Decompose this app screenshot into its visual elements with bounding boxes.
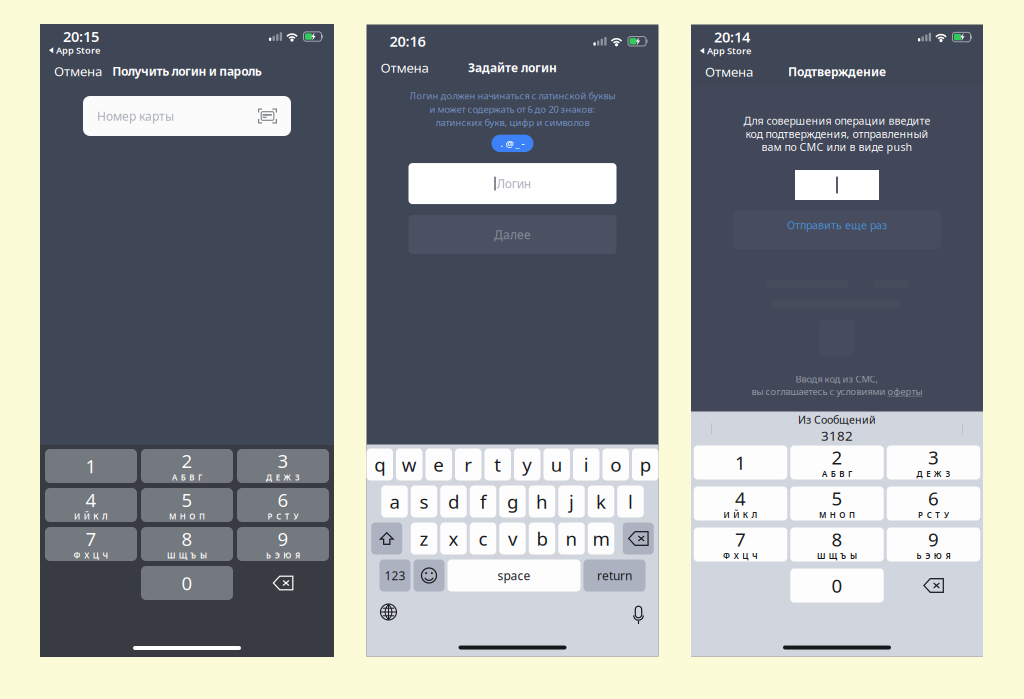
button[interactable]: 8 (141, 527, 233, 561)
button[interactable]: q (366, 448, 393, 480)
button[interactable]: 2 (790, 445, 884, 479)
button[interactable]: b (529, 522, 555, 554)
button[interactable]: w (396, 448, 422, 480)
button[interactable]: 0 (141, 566, 233, 600)
button[interactable]: h (529, 485, 555, 517)
button[interactable]: t (484, 448, 511, 480)
staticText: space (497, 567, 530, 583)
button[interactable]: Next keyboard (380, 604, 396, 620)
staticText: АБВГ (172, 472, 202, 483)
button[interactable]: Далее (408, 215, 616, 254)
button[interactable]: Отмена (691, 58, 763, 85)
button[interactable]: Delete (887, 568, 980, 602)
button[interactable]: 6 (887, 486, 980, 520)
button[interactable]: 7 (694, 527, 787, 561)
staticText: 2 (831, 445, 842, 470)
button[interactable]: j (558, 485, 585, 517)
button[interactable]: 2 (141, 449, 233, 483)
button[interactable]: 7 (45, 527, 137, 561)
button[interactable]: s (411, 485, 437, 517)
staticText: 20:16 (389, 31, 425, 51)
button[interactable]: 5 (790, 486, 884, 520)
button[interactable]: o (602, 448, 629, 480)
button[interactable]: space (447, 559, 580, 591)
staticText: 1 (85, 454, 96, 478)
staticText: и может содержать от 6 до 20 знаков: (429, 103, 595, 115)
staticText: Номер карты (97, 108, 174, 124)
staticText: s (419, 489, 428, 514)
button[interactable]: z (411, 522, 437, 554)
button[interactable]: e (425, 448, 452, 480)
button[interactable]: Dictation (632, 602, 644, 621)
button[interactable]: 6 (237, 488, 329, 522)
button[interactable]: Из Сообщений (798, 413, 876, 444)
staticText: Логин должен начинаться с латинской букв… (409, 89, 615, 102)
button[interactable]: m (588, 522, 614, 554)
button[interactable]: v (499, 522, 526, 554)
button[interactable]: 5 (141, 488, 233, 522)
staticText: g (507, 489, 518, 514)
button[interactable]: r (455, 448, 481, 480)
staticText: p (640, 452, 651, 477)
button[interactable]: Отмена (40, 57, 112, 85)
button[interactable]: Номер карты (83, 96, 291, 136)
button[interactable]: Отмена (366, 54, 438, 81)
button[interactable]: k (588, 485, 614, 517)
staticText: 4 (735, 486, 746, 511)
staticText: Получить логин и пароль (112, 63, 262, 79)
staticText: d (448, 489, 459, 514)
button[interactable]: u (543, 448, 570, 480)
staticText: Для совершения операции введите (743, 113, 930, 128)
button[interactable]: a (381, 485, 408, 517)
button[interactable]: return (583, 559, 645, 591)
button[interactable]: c (470, 522, 496, 554)
button[interactable]: Логин (408, 163, 616, 204)
button[interactable]: d (440, 485, 467, 517)
button[interactable]: n (558, 522, 585, 554)
button[interactable]: 1 (694, 445, 787, 479)
button[interactable]: f (470, 485, 496, 517)
button[interactable]: g (499, 485, 526, 517)
staticText: n (565, 526, 577, 551)
button[interactable] (795, 170, 879, 200)
button[interactable]: x (440, 522, 467, 554)
button[interactable]: 9 (237, 527, 329, 561)
staticText: 1 (735, 450, 746, 475)
staticText: 6 (928, 486, 939, 511)
button[interactable]: Emoji (413, 559, 444, 591)
button[interactable]: Delete (237, 566, 329, 600)
button[interactable]: 3 (237, 449, 329, 483)
button[interactable]: 1 (45, 449, 137, 483)
button[interactable]: Отправить еще раз (787, 214, 887, 236)
button[interactable]: y (514, 448, 540, 480)
staticText: App Store (56, 44, 100, 56)
staticText: ШЩЪЫ (817, 551, 857, 561)
staticText: МНОП (169, 511, 205, 522)
staticText: 9 (277, 526, 288, 551)
button[interactable]: 3 (887, 445, 980, 479)
staticText: h (536, 489, 548, 514)
staticText: b (536, 526, 547, 551)
button[interactable]: i (573, 448, 599, 480)
button[interactable]: 4 (45, 488, 137, 522)
staticText: . @ _ - (500, 137, 524, 150)
staticText: Отмена (54, 62, 102, 80)
button[interactable]: Shift (371, 522, 402, 554)
button[interactable]: 0 (790, 568, 884, 602)
staticText: 0 (831, 573, 842, 598)
button[interactable]: Delete (623, 522, 654, 554)
staticText: 6 (277, 487, 288, 512)
button[interactable]: l (617, 485, 644, 517)
staticText: 4 (85, 487, 96, 512)
staticText: x (448, 526, 458, 551)
staticText: РСТУ (268, 511, 298, 522)
staticText: 5 (181, 487, 192, 512)
button[interactable]: 9 (887, 527, 980, 561)
button[interactable]: 123 (379, 559, 410, 591)
button[interactable]: p (632, 448, 658, 480)
staticText: u (551, 452, 563, 477)
button[interactable]: 4 (694, 486, 787, 520)
staticText: z (419, 526, 428, 551)
staticText: y (522, 452, 532, 477)
button[interactable]: 8 (790, 527, 884, 561)
